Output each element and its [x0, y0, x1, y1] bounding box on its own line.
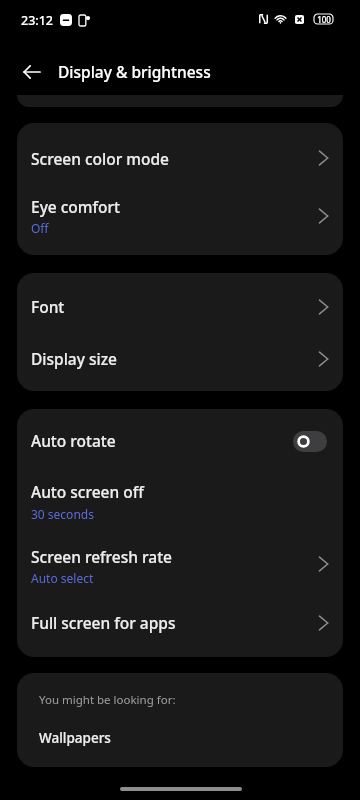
staticText: 100 — [317, 14, 331, 24]
button[interactable] — [17, 600, 343, 657]
staticText: Eye comfort — [31, 196, 121, 217]
staticText: Screen refresh rate — [31, 546, 172, 567]
button[interactable] — [17, 332, 343, 391]
button[interactable] — [17, 182, 343, 255]
button[interactable]: Auto rotate — [293, 431, 327, 452]
button[interactable] — [17, 409, 343, 468]
staticText: 30 seconds — [31, 506, 94, 522]
button[interactable] — [17, 536, 343, 600]
button[interactable]: Back — [18, 58, 46, 86]
staticText: Wallpapers — [39, 729, 111, 747]
button[interactable] — [17, 273, 343, 332]
staticText: You might be looking for: — [39, 692, 176, 708]
button[interactable] — [17, 123, 343, 182]
staticText: Display size — [31, 348, 117, 369]
staticText: Screen color mode — [31, 148, 169, 169]
staticText: 23:12 — [21, 12, 54, 29]
staticText: Full screen for apps — [31, 612, 176, 633]
staticText: Font — [31, 296, 65, 317]
staticText: Auto rotate — [31, 430, 116, 451]
button[interactable] — [17, 720, 343, 767]
button[interactable] — [17, 468, 343, 536]
staticText: Off — [31, 220, 49, 236]
staticText: Display & brightness — [58, 61, 211, 82]
staticText: Auto screen off — [31, 481, 144, 502]
staticText: Auto select — [31, 570, 94, 586]
